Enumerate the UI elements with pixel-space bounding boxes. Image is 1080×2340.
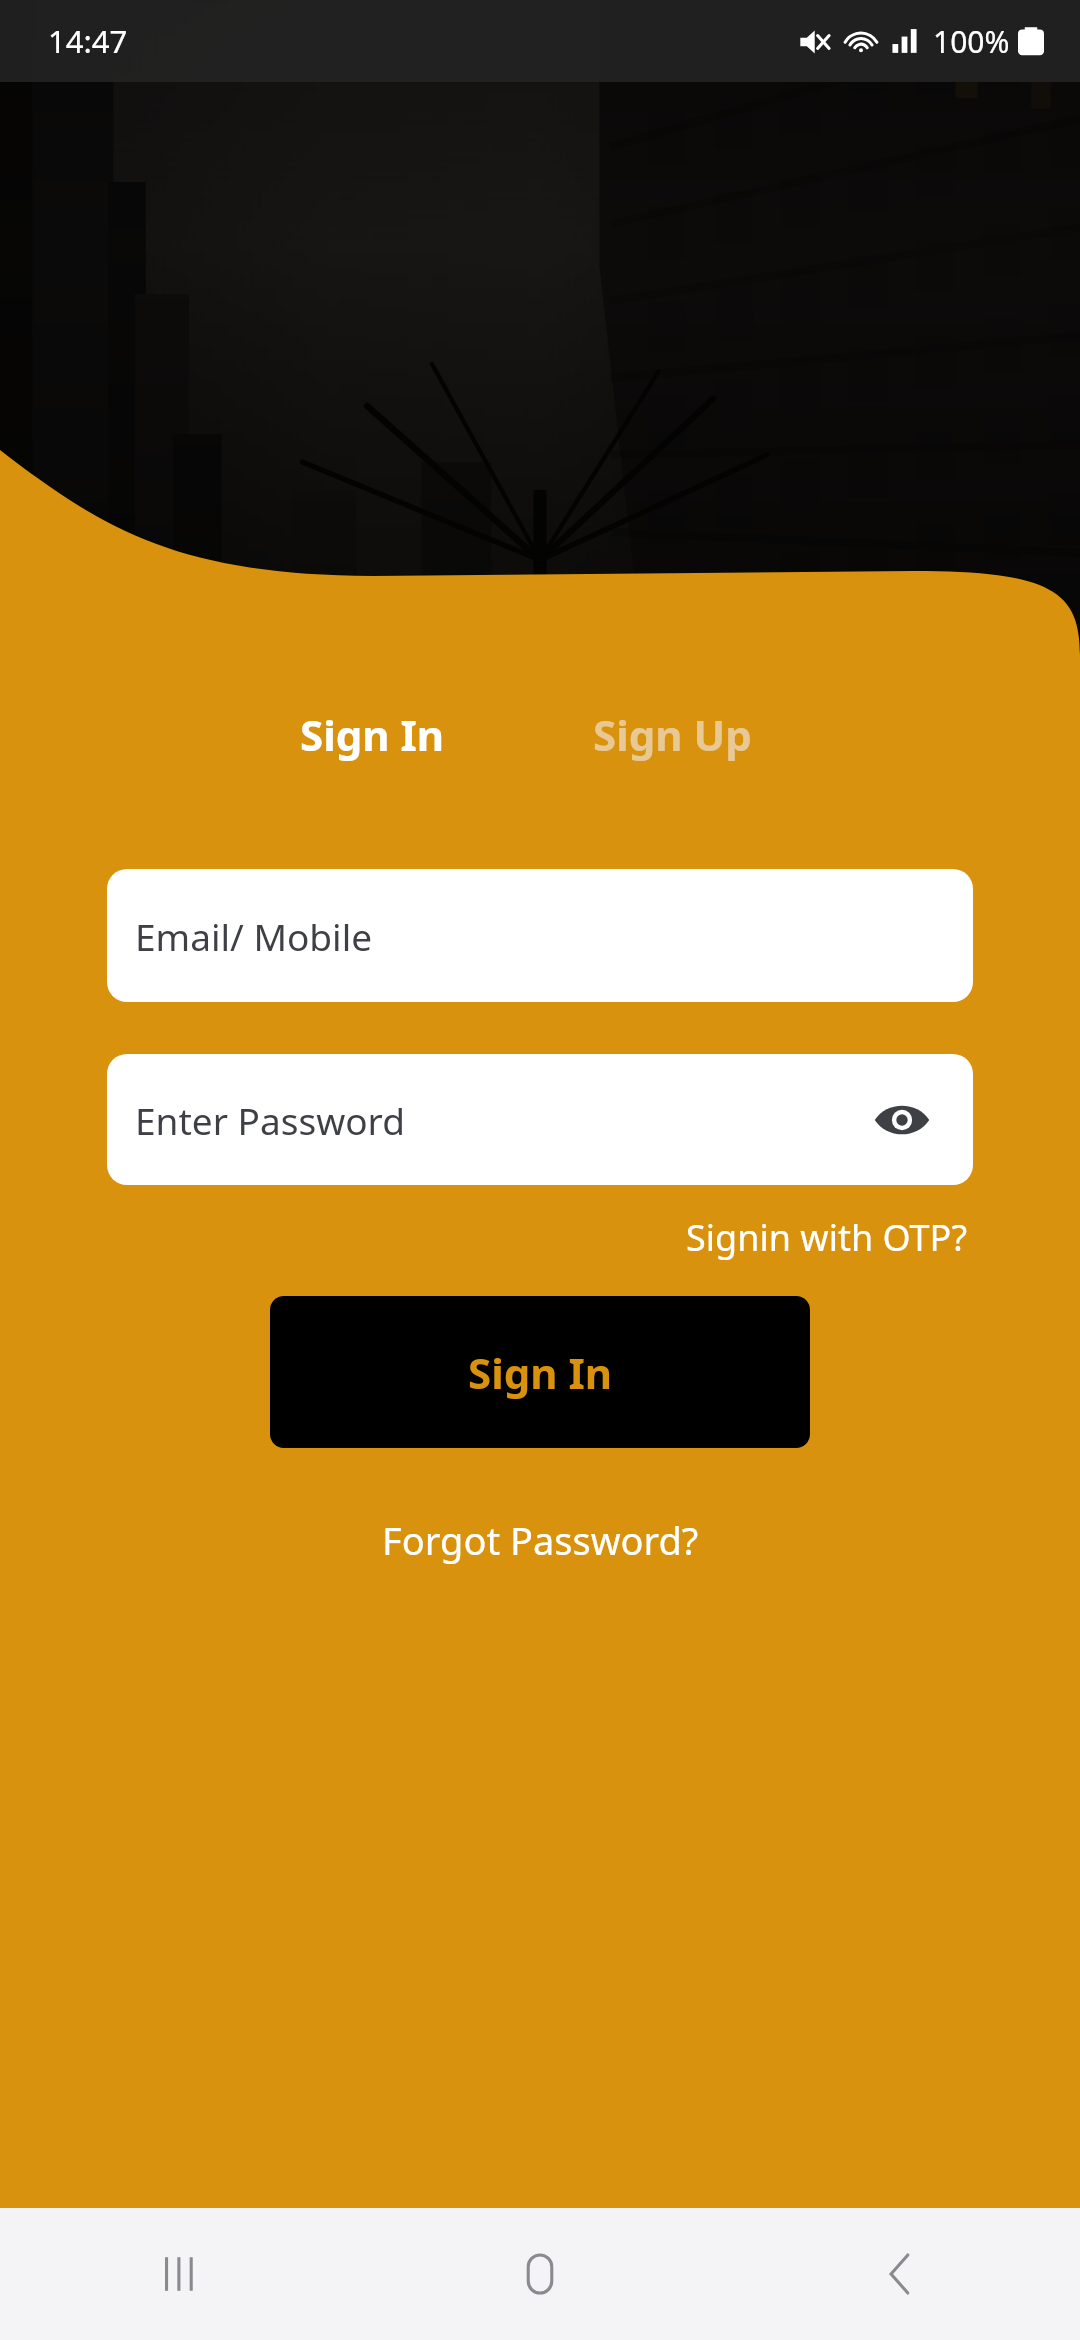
- staticText: Enter Password: [135, 1095, 405, 1145]
- staticText: Sign In: [468, 1344, 613, 1401]
- staticText: Forgot Password?: [382, 1514, 699, 1566]
- button[interactable]: Show password: [871, 1089, 933, 1151]
- staticText: Sign Up: [593, 706, 752, 763]
- button[interactable]: Sign Up: [583, 700, 762, 769]
- button[interactable]: Email/ Mobile: [107, 869, 973, 1002]
- button[interactable]: Signin with OTP?: [680, 1207, 973, 1268]
- button[interactable]: Back: [720, 2208, 1080, 2340]
- button[interactable]: Sign In: [270, 1296, 810, 1448]
- button[interactable]: Sign In: [290, 700, 455, 769]
- button[interactable]: Recent apps: [0, 2208, 360, 2340]
- staticText: Signin with OTP?: [686, 1213, 967, 1262]
- staticText: Sign In: [300, 706, 445, 763]
- staticText: Email/ Mobile: [135, 911, 373, 961]
- staticText: 100%: [933, 21, 1010, 62]
- button[interactable]: Forgot Password?: [372, 1506, 709, 1574]
- button[interactable]: Enter Password: [107, 1054, 973, 1185]
- button[interactable]: Home: [360, 2208, 720, 2340]
- staticText: 14:47: [48, 20, 128, 62]
